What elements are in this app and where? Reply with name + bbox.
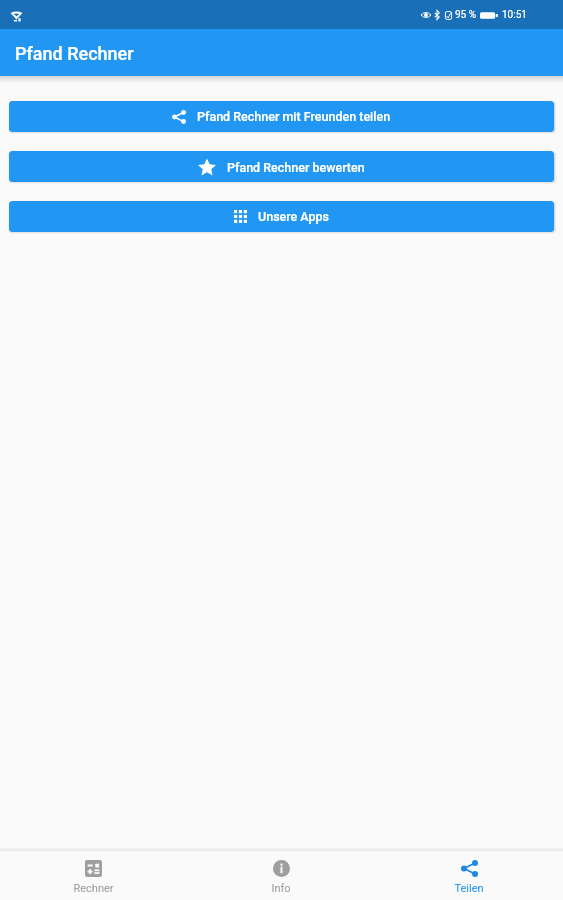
button[interactable]: Share xyxy=(9,101,554,132)
staticText: Pfand Rechner xyxy=(15,43,134,64)
staticText: Unsere Apps xyxy=(258,209,330,224)
staticText: Rechner xyxy=(73,882,114,895)
button[interactable]: Teilen xyxy=(375,851,563,900)
staticText: Teilen xyxy=(454,882,484,895)
staticText: 10:51 xyxy=(502,9,527,21)
button[interactable]: Rechner xyxy=(0,851,187,900)
staticText: Pfand Rechner bewerten xyxy=(227,160,365,175)
button[interactable]: Our apps xyxy=(9,201,554,232)
button[interactable]: Rate xyxy=(9,151,554,182)
staticText: 95 % xyxy=(455,9,477,21)
staticText: Info xyxy=(271,882,291,895)
staticText: Pfand Rechner mit Freunden teilen xyxy=(197,109,391,124)
button[interactable]: Info xyxy=(187,851,375,900)
